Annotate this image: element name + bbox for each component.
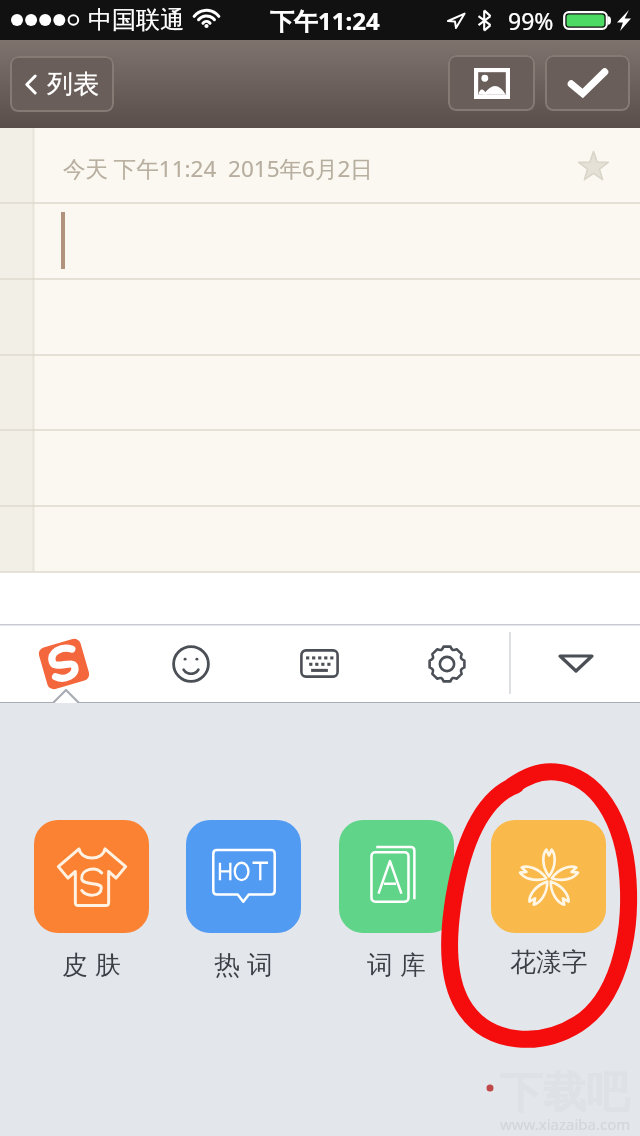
button[interactable]: Keyboard	[279, 634, 359, 693]
staticText: 今天 下午11:24 2015年6月2日	[63, 153, 373, 184]
staticText: 词 库	[367, 946, 426, 982]
button[interactable]: 花漾字	[491, 820, 606, 979]
button[interactable]: Settings	[407, 634, 487, 693]
staticText: 中国联通	[88, 5, 184, 35]
staticText: 下午11:24	[270, 4, 380, 37]
staticText: 列表	[47, 68, 99, 101]
button[interactable]: Sogou input method	[24, 634, 104, 693]
staticText: www.xiazaiba.com	[500, 1114, 631, 1134]
button[interactable]: 皮 肤	[34, 820, 149, 982]
button[interactable]: 热 词	[186, 820, 301, 982]
button[interactable]: 词 库	[339, 820, 454, 982]
button[interactable]: Emoji	[151, 634, 231, 693]
button[interactable]: Done	[545, 55, 630, 111]
staticText: 花漾字	[510, 946, 588, 979]
staticText: 热 词	[214, 946, 273, 982]
staticText: 99%	[508, 5, 554, 36]
button[interactable]: 列表	[10, 56, 114, 112]
button[interactable]: Hide keyboard	[536, 634, 616, 693]
button[interactable]: Favourite	[574, 147, 612, 185]
staticText: 皮 肤	[62, 946, 121, 982]
button[interactable]: Insert photo	[448, 55, 535, 111]
